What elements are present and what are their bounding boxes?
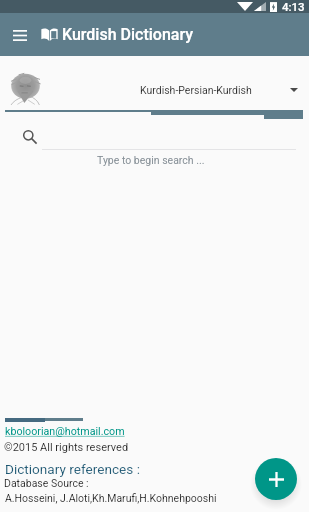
button[interactable]: Open navigation drawer [12,27,28,43]
staticText: Kurdish Dictionary [62,25,194,44]
staticText: 4:13 [282,0,305,13]
button[interactable]: Search [20,126,300,148]
button[interactable]: Add word [255,458,297,500]
button[interactable]: kboloorian@hotmail.com [5,425,125,438]
staticText: Type to begin search ... [97,154,205,166]
staticText: Dictionary references : [5,461,140,477]
staticText: Database Source : [4,477,89,489]
button[interactable]: Kurdish-Persian-Kurdish [140,79,298,101]
staticText: Kurdish-Persian-Kurdish [140,84,252,96]
staticText: A.Hosseini, J.Aloti,Kh.Marufi,H.Kohnehpo… [5,492,217,504]
staticText: ©2015 All rights reserved [4,441,129,454]
